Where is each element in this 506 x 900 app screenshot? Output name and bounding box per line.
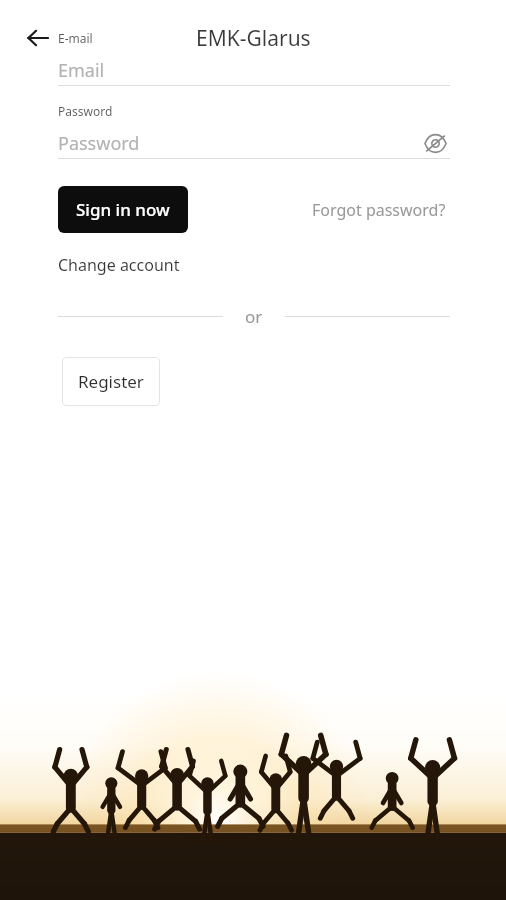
staticText: Change account [58, 254, 180, 276]
button[interactable]: Sign in now [58, 186, 188, 233]
button[interactable]: Password [58, 128, 420, 158]
staticText: Register [78, 370, 144, 393]
staticText: Password [58, 103, 113, 119]
button[interactable]: Register [62, 357, 160, 406]
staticText: Forgot password? [312, 199, 446, 221]
button[interactable]: Show password [420, 128, 450, 158]
button[interactable]: Change account [58, 254, 180, 276]
staticText: EMK-Glarus [196, 24, 311, 53]
staticText: Password [58, 131, 140, 156]
staticText: Sign in now [76, 198, 170, 221]
button[interactable]: Back [16, 16, 60, 60]
staticText: E-mail [58, 30, 93, 46]
button[interactable]: Forgot password? [308, 195, 450, 225]
staticText: or [245, 305, 263, 328]
button[interactable]: Email [58, 55, 450, 85]
staticText: Email [58, 58, 105, 83]
